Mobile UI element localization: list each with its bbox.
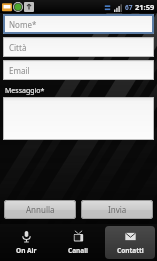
staticText: 21:59	[135, 2, 155, 12]
button[interactable]: Invia	[81, 200, 153, 219]
staticText: Annulla	[26, 204, 55, 215]
button[interactable]	[3, 97, 154, 140]
staticText: Nome*	[9, 19, 37, 30]
staticText: 67	[125, 3, 133, 12]
staticText: Contatti	[117, 246, 144, 255]
button[interactable]: Email	[3, 60, 154, 80]
staticText: Messaggio*	[5, 86, 45, 96]
staticText: Invia	[108, 204, 127, 215]
staticText: Canali	[68, 246, 89, 255]
button[interactable]: Contatti	[105, 226, 155, 259]
button[interactable]: Annulla	[4, 200, 76, 219]
button[interactable]: Nome*	[3, 14, 154, 34]
button[interactable]: Città	[3, 37, 154, 57]
staticText: Email	[9, 65, 30, 76]
button[interactable]: Canali	[53, 226, 103, 259]
staticText: On Air	[16, 246, 37, 255]
staticText: Città	[9, 42, 27, 53]
button[interactable]: On Air	[2, 226, 51, 259]
